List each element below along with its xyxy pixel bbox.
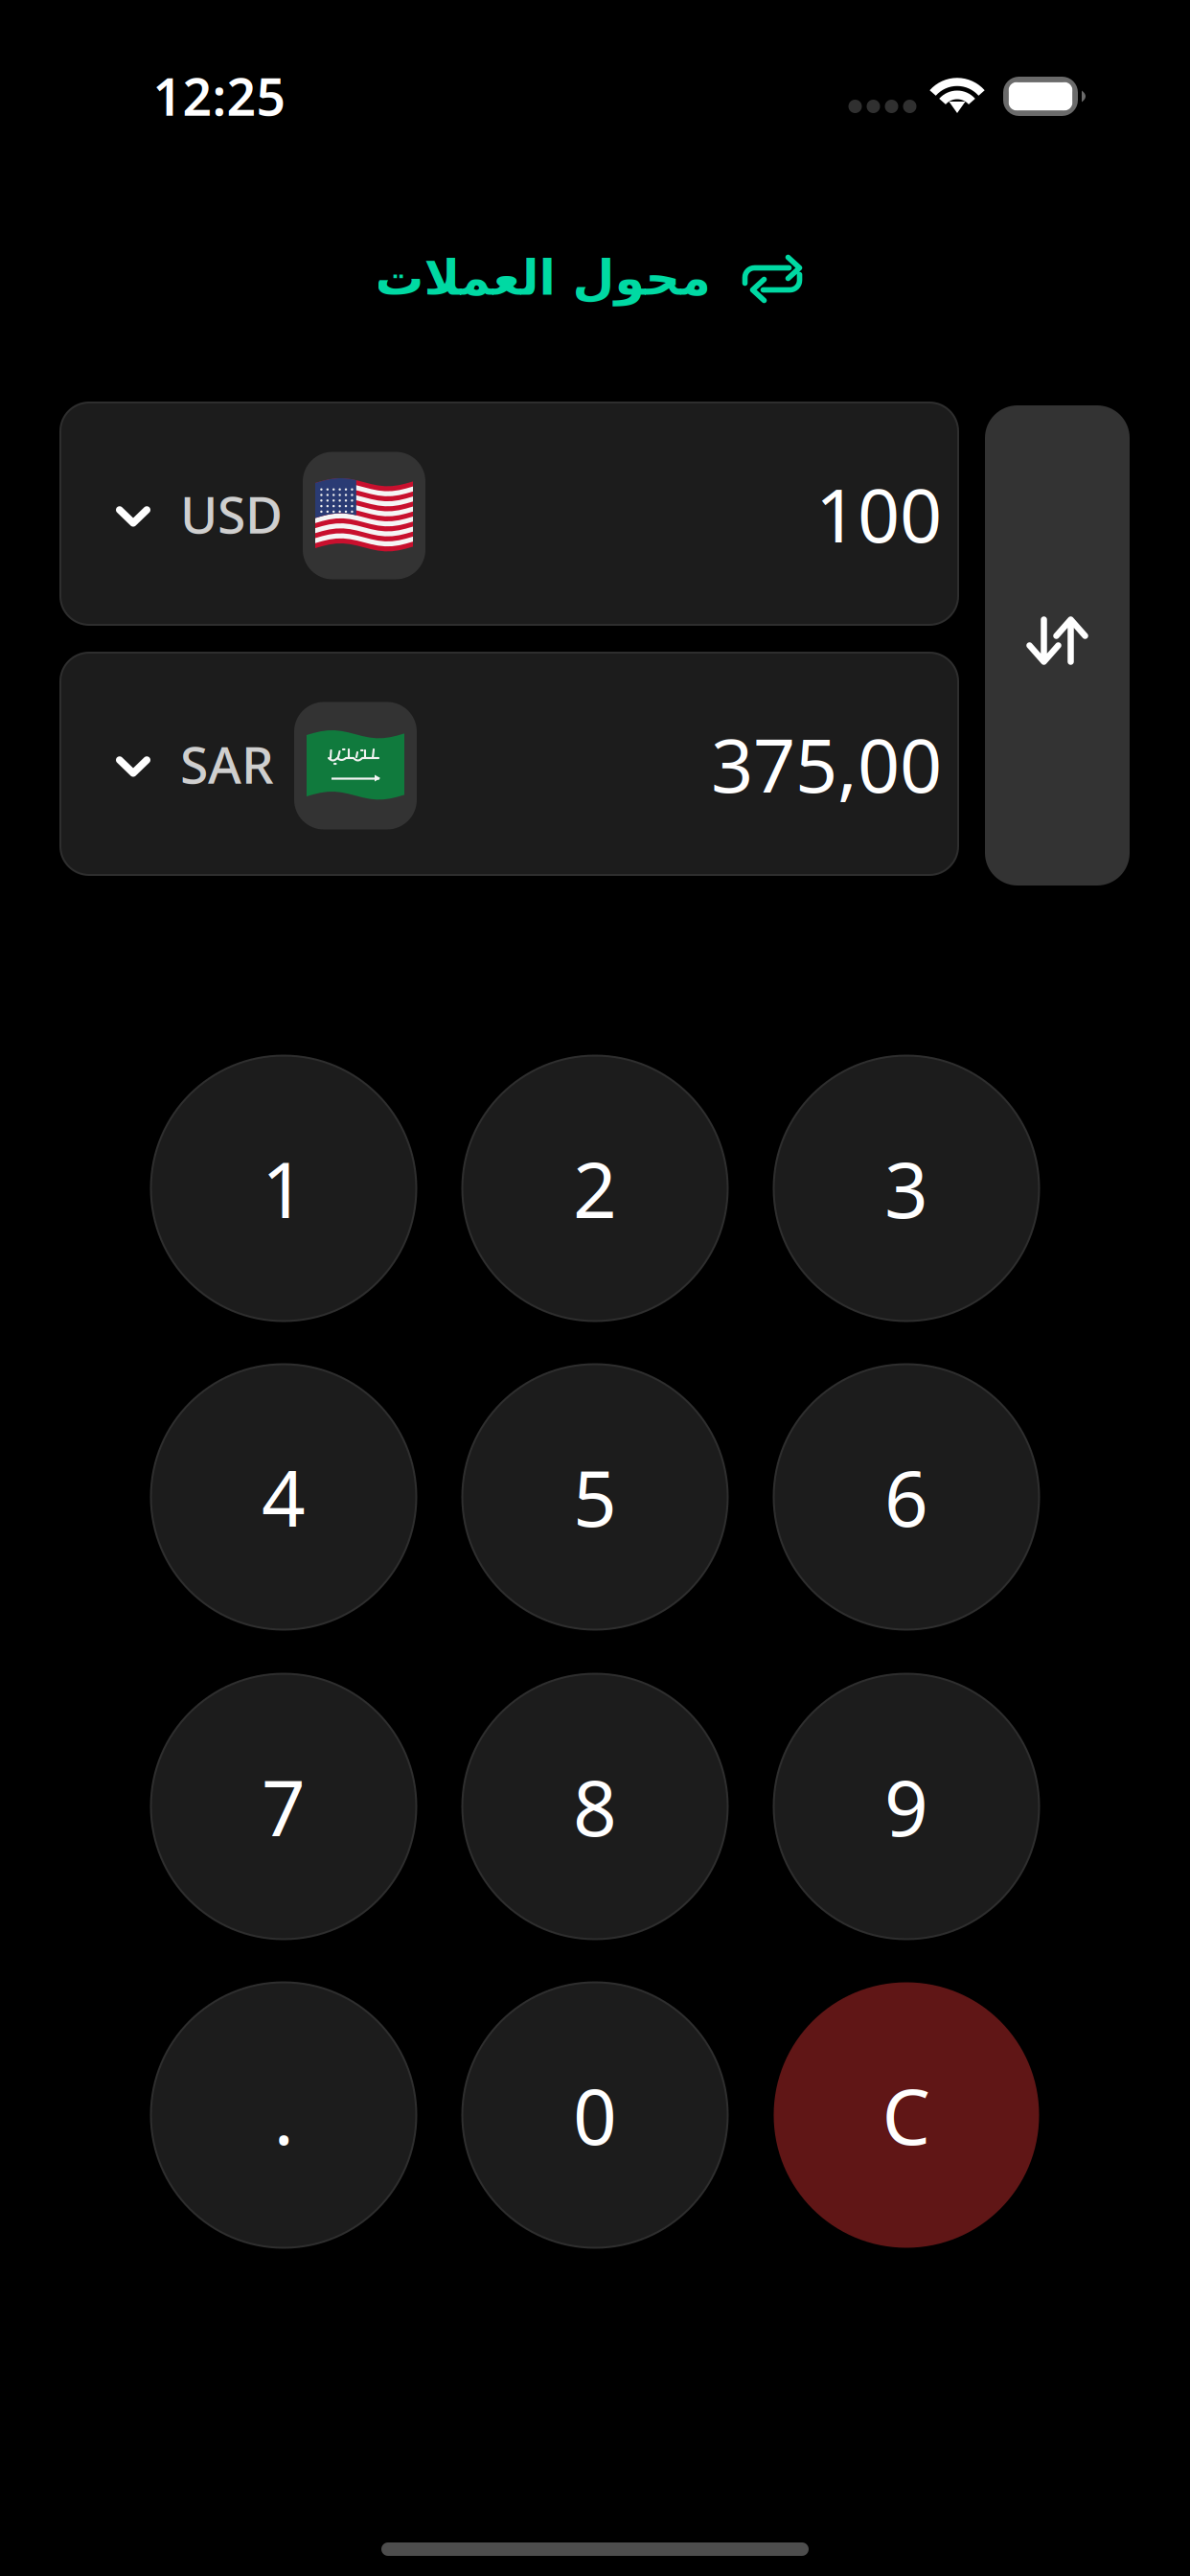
staticText: 9 [884,1756,928,1857]
button[interactable]: 7 [151,1674,416,1939]
button[interactable]: 8 [462,1674,728,1939]
button[interactable]: 0 [462,1982,728,2248]
staticText: 2 [573,1137,617,1239]
button[interactable]: 6 [774,1364,1039,1630]
staticText: 100 [815,465,942,563]
button[interactable]: 4 [151,1364,416,1630]
button[interactable]: USD, 100. Change currency [60,402,958,625]
button[interactable]: 1 [151,1056,416,1321]
staticText: 1 [262,1137,306,1239]
staticText: 3 [884,1137,928,1239]
button[interactable]: Clear [774,1982,1039,2248]
staticText: 8 [573,1756,617,1857]
staticText: 6 [884,1446,928,1548]
button[interactable]: 2 [462,1056,728,1321]
button[interactable]: Swap currencies [985,405,1130,885]
staticText: 4 [262,1446,306,1548]
staticText: محول العملات [375,250,710,305]
staticText: C [882,2064,931,2166]
button[interactable]: 3 [774,1056,1039,1321]
button[interactable]: SAR, 375,00. Change currency [60,653,958,875]
button[interactable]: Decimal point [151,1982,416,2248]
staticText: . [274,2064,294,2166]
staticText: USD [180,480,283,548]
staticText: 12:25 [153,62,286,130]
button[interactable]: 9 [774,1674,1039,1939]
staticText: 0 [573,2064,617,2166]
staticText: 375,00 [711,715,942,813]
staticText: 7 [262,1756,306,1857]
staticText: SAR [180,730,274,798]
button[interactable]: 5 [462,1364,728,1630]
staticText: 5 [573,1446,617,1548]
